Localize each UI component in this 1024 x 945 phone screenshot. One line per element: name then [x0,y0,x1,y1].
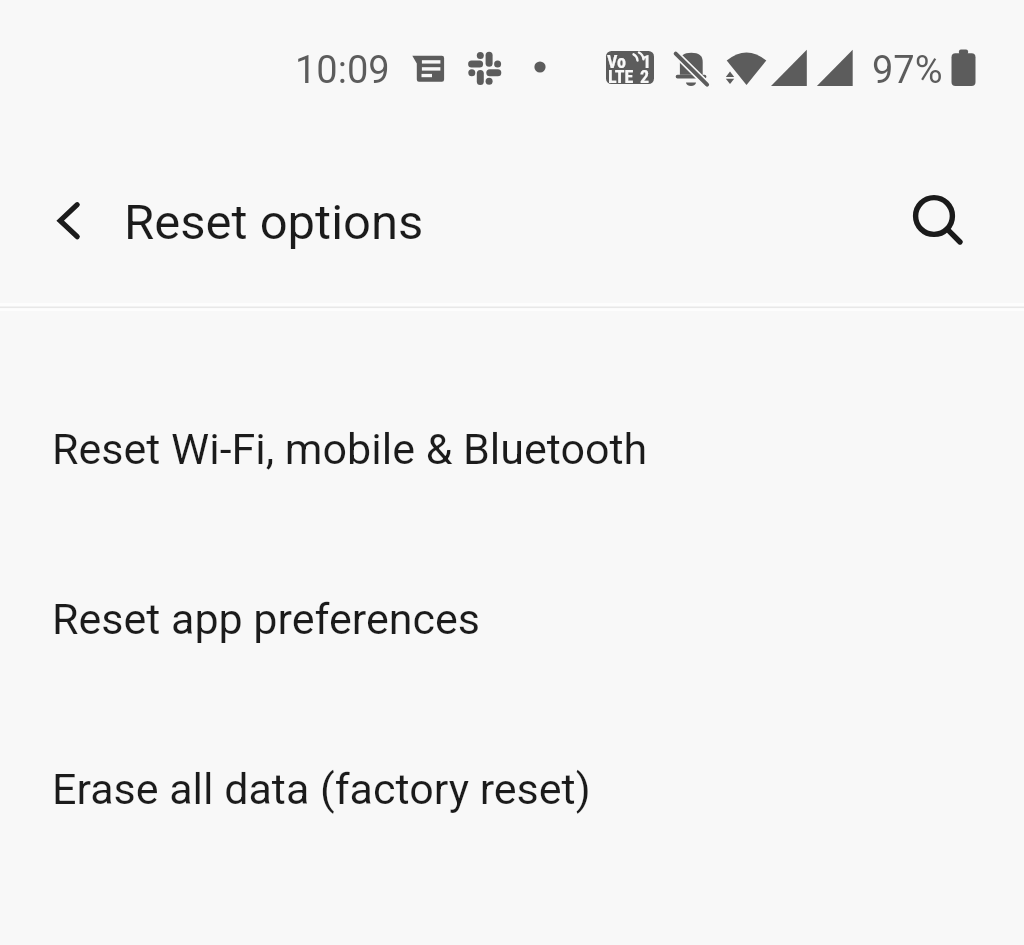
button[interactable]: Reset app preferences [0,534,1024,704]
staticText: Vo [607,51,626,72]
button[interactable]: Search settings [891,173,977,259]
staticText: 2 [640,66,650,87]
staticText: 1 [642,51,652,72]
staticText: 10:09 [295,48,390,93]
staticText: Erase all data (factory reset) [52,764,591,814]
staticText: Reset Wi-Fi, mobile & Bluetooth [52,424,648,474]
staticText: Reset app preferences [52,594,480,644]
staticText: Reset options [124,194,424,251]
staticText: LTE [608,66,634,87]
staticText: 97% [872,48,943,93]
button[interactable]: Navigate up [21,174,107,260]
button[interactable]: Reset Wi-Fi, mobile & Bluetooth [0,364,1024,534]
button[interactable]: Erase all data (factory reset) [0,704,1024,874]
